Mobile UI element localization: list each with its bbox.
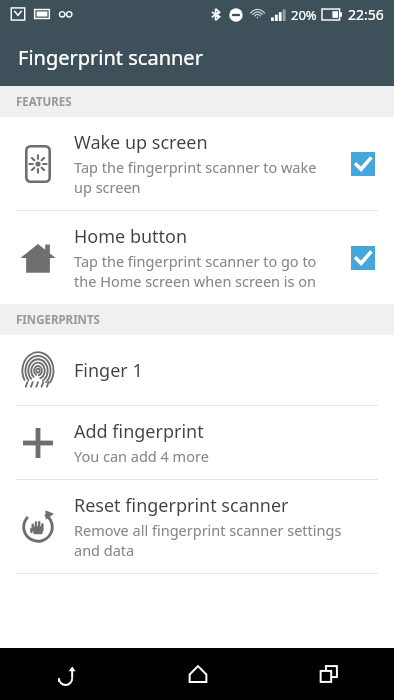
button[interactable]: Back: [0, 648, 132, 700]
staticText: Fingerprint scanner: [18, 44, 203, 71]
staticText: FEATURES: [16, 94, 72, 110]
staticText: Finger 1: [74, 358, 143, 383]
staticText: Tap the fingerprint scanner to wake up s…: [74, 157, 317, 197]
staticText: Reset fingerprint scanner: [74, 493, 289, 518]
button[interactable]: Home button: [0, 211, 394, 304]
staticText: Tap the fingerprint scanner to go to the…: [74, 251, 317, 291]
button[interactable]: Finger 1: [0, 335, 394, 405]
button[interactable]: Wake up screen: [0, 117, 394, 210]
staticText: 22:56: [348, 5, 384, 24]
staticText: Home button: [74, 224, 188, 249]
staticText: 20%: [291, 6, 317, 24]
staticText: Add fingerprint: [74, 419, 204, 444]
staticText: You can add 4 more: [74, 446, 209, 466]
button[interactable]: Add fingerprint: [0, 406, 394, 479]
button[interactable]: Reset fingerprint scanner: [0, 480, 394, 573]
button[interactable]: Toggle Wake up screen: [346, 147, 380, 181]
staticText: Wake up screen: [74, 130, 208, 155]
button[interactable]: Home: [132, 648, 263, 700]
button[interactable]: Recent apps: [263, 648, 394, 700]
button[interactable]: Toggle Home button: [346, 241, 380, 275]
staticText: Remove all fingerprint scanner settings …: [74, 520, 342, 560]
staticText: FINGERPRINTS: [16, 312, 100, 328]
